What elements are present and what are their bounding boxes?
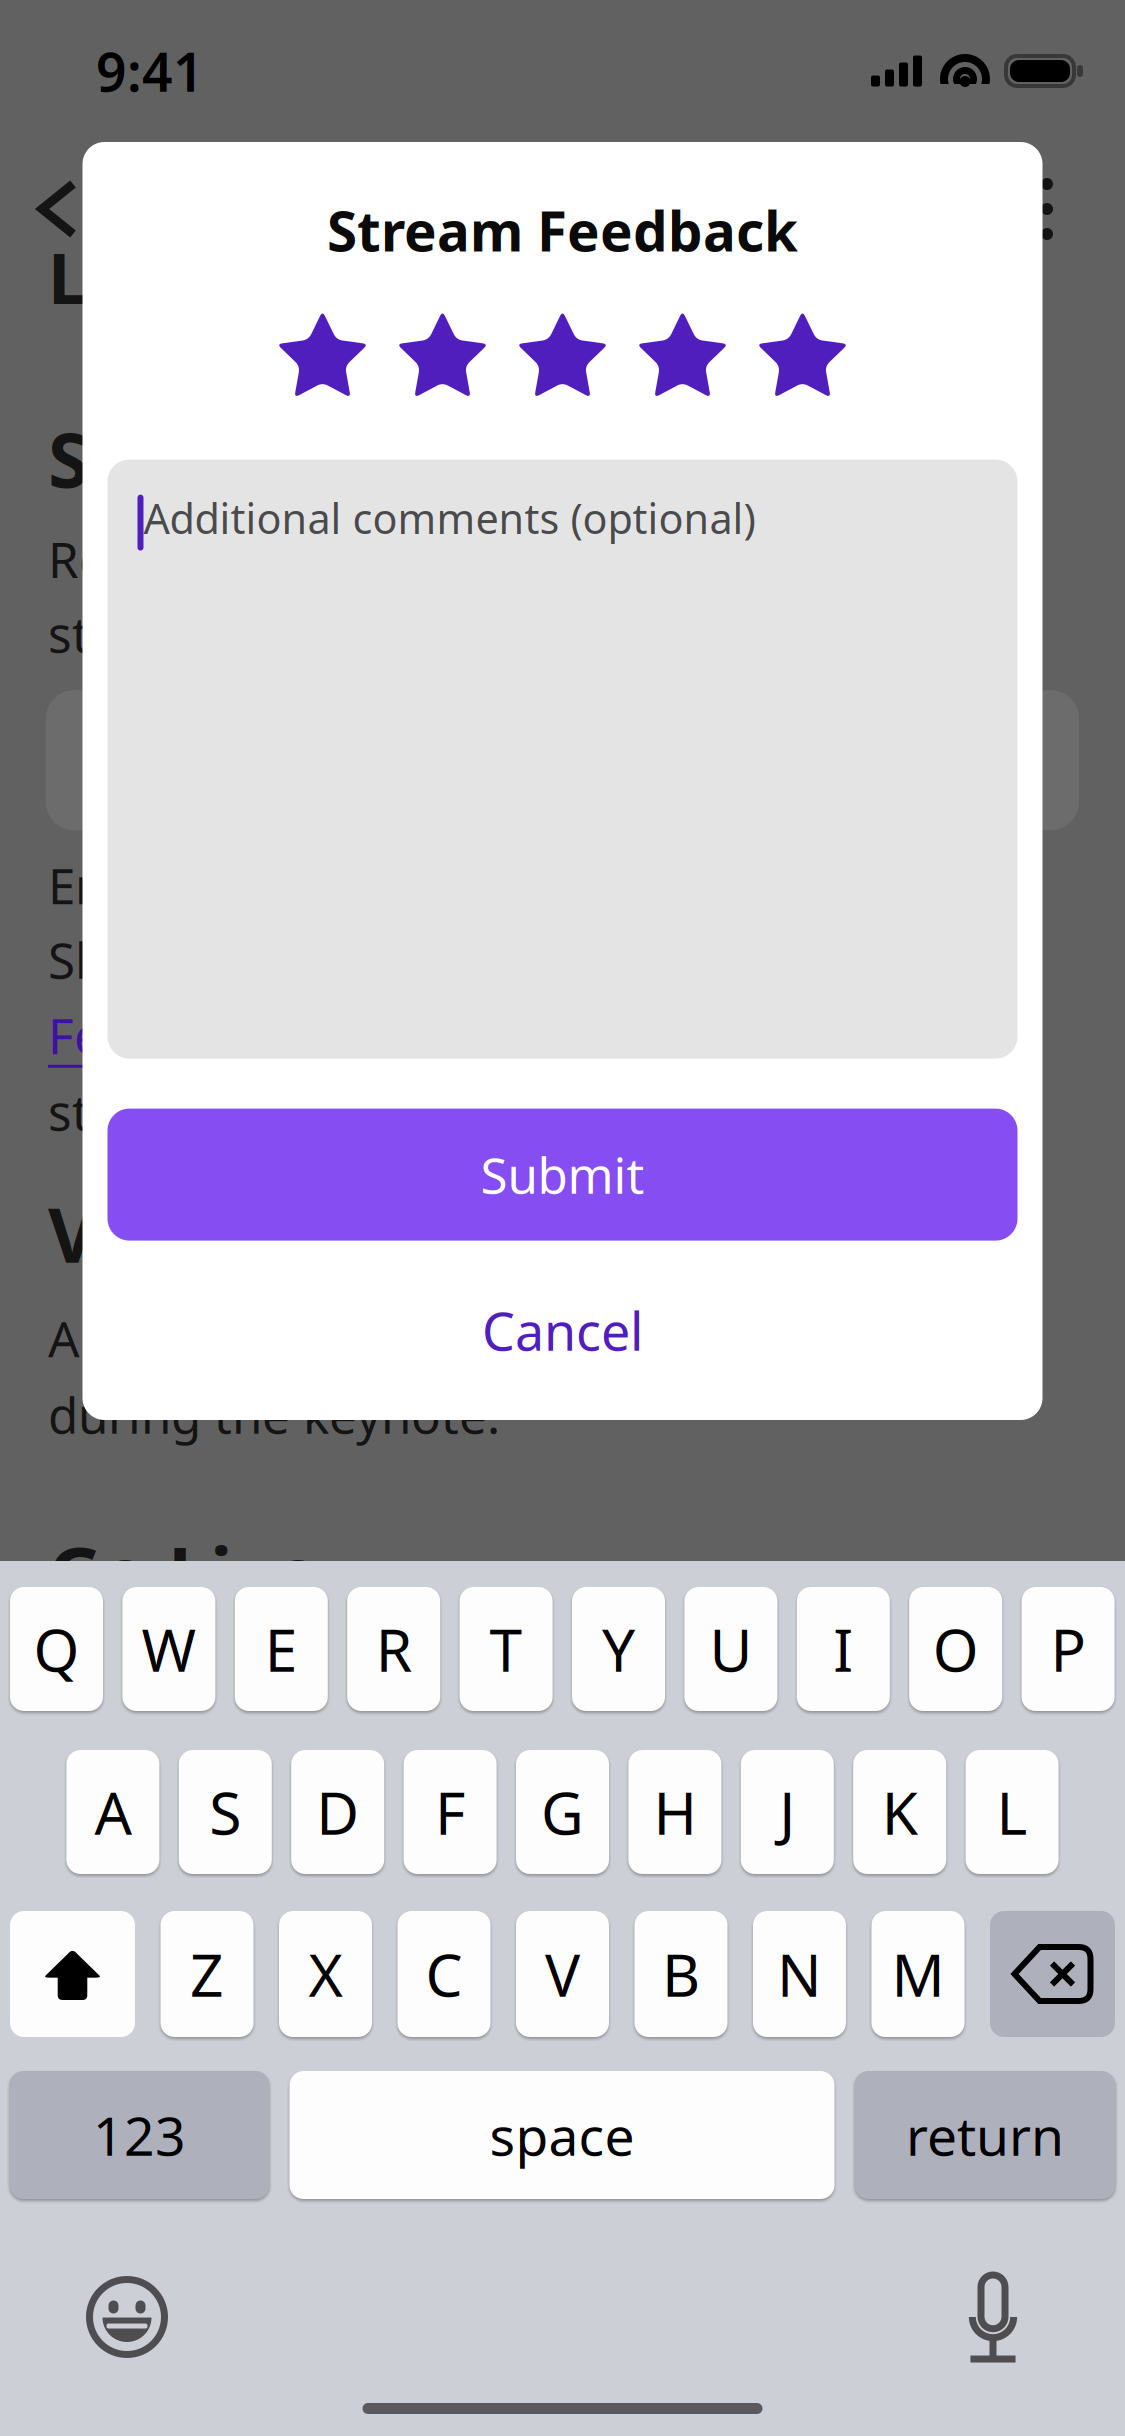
staticText: F bbox=[435, 1773, 465, 1851]
button[interactable]: Rate 5 stars bbox=[757, 307, 848, 403]
staticText: K bbox=[882, 1773, 918, 1851]
button[interactable]: N bbox=[753, 1911, 846, 2037]
staticText: during the keynote. bbox=[48, 1382, 500, 1447]
button[interactable]: Rate 1 stars bbox=[277, 307, 368, 403]
button[interactable]: G bbox=[516, 1750, 609, 1874]
button[interactable]: X bbox=[279, 1911, 372, 2037]
button[interactable]: 123 bbox=[9, 2071, 269, 2199]
staticText: Stream Feedback bbox=[327, 194, 798, 267]
staticText: G bbox=[541, 1773, 584, 1851]
button[interactable]: Rate 3 stars bbox=[517, 307, 608, 403]
button[interactable]: Shift bbox=[10, 1911, 135, 2037]
staticText: D bbox=[316, 1773, 359, 1851]
button[interactable]: Delete bbox=[990, 1911, 1115, 2037]
staticText: P bbox=[1051, 1610, 1086, 1688]
staticText: space bbox=[489, 2100, 634, 2170]
button[interactable]: W bbox=[122, 1587, 215, 1711]
staticText: Q bbox=[33, 1610, 79, 1688]
button[interactable]: E bbox=[235, 1587, 328, 1711]
staticText: Audience peaked at 1,240 bbox=[48, 1305, 643, 1371]
button[interactable]: Q bbox=[10, 1587, 103, 1711]
button[interactable]: H bbox=[628, 1750, 721, 1874]
staticText: Live Stream Quality bbox=[48, 231, 728, 323]
staticText: Cancel bbox=[482, 1296, 643, 1365]
staticText: M bbox=[891, 1935, 944, 2013]
staticText: E bbox=[265, 1610, 298, 1688]
button[interactable]: Cancel bbox=[82, 1286, 1042, 1376]
staticText: 123 bbox=[93, 2100, 186, 2170]
staticText: Recent broadcast ran for 1 h 12 m with bbox=[48, 526, 946, 592]
staticText: N bbox=[777, 1935, 822, 2013]
button[interactable]: V bbox=[516, 1911, 609, 2037]
button[interactable]: U bbox=[684, 1587, 777, 1711]
button[interactable]: O bbox=[909, 1587, 1002, 1711]
button[interactable]: D bbox=[291, 1750, 384, 1874]
staticText: return bbox=[906, 2100, 1064, 2170]
staticText: A bbox=[94, 1773, 131, 1851]
staticText: S bbox=[209, 1773, 241, 1851]
button[interactable]: A bbox=[66, 1750, 159, 1874]
button[interactable]: Y bbox=[572, 1587, 665, 1711]
button[interactable]: F bbox=[404, 1750, 497, 1874]
button[interactable]: return bbox=[854, 2071, 1115, 2199]
staticText: C bbox=[425, 1935, 462, 2013]
staticText: Enjoying the service? Tap bbox=[48, 852, 624, 918]
button[interactable]: M bbox=[871, 1911, 964, 2037]
staticText: Share your experience with us bbox=[48, 927, 745, 992]
staticText: Submit bbox=[480, 1142, 644, 1207]
staticText: Session Summary bbox=[48, 409, 702, 508]
staticText: X bbox=[308, 1935, 342, 2013]
staticText: Z bbox=[190, 1935, 224, 2013]
button[interactable]: L bbox=[966, 1750, 1059, 1874]
staticText: Feedback bbox=[48, 1002, 268, 1068]
staticText: Y bbox=[602, 1610, 635, 1688]
staticText: R bbox=[376, 1610, 412, 1688]
staticText: O bbox=[933, 1610, 979, 1688]
button[interactable]: Dictate bbox=[969, 2275, 1017, 2359]
staticText: W bbox=[141, 1610, 196, 1688]
button[interactable]: More options bbox=[1025, 162, 1069, 256]
button[interactable]: B bbox=[634, 1911, 727, 2037]
button[interactable]: space bbox=[289, 2071, 834, 2199]
button[interactable]: K bbox=[853, 1750, 946, 1874]
staticText: T bbox=[490, 1610, 523, 1688]
staticText: Viewers bbox=[48, 1184, 341, 1283]
button[interactable]: S bbox=[179, 1750, 272, 1874]
button[interactable]: Submit bbox=[107, 1109, 1017, 1241]
staticText: J bbox=[779, 1773, 795, 1851]
button[interactable]: C bbox=[397, 1911, 490, 2037]
button[interactable]: J bbox=[741, 1750, 834, 1874]
staticText: 9:41 bbox=[96, 36, 204, 106]
staticText: V bbox=[545, 1935, 580, 2013]
button[interactable]: Z bbox=[160, 1911, 253, 2037]
button[interactable]: T bbox=[460, 1587, 553, 1711]
button[interactable]: Back bbox=[26, 168, 89, 250]
button[interactable]: Rate 2 stars bbox=[397, 307, 488, 403]
staticText: I bbox=[833, 1610, 853, 1688]
staticText: U bbox=[709, 1610, 752, 1688]
button[interactable]: P bbox=[1022, 1587, 1115, 1711]
staticText: Additional comments (optional) bbox=[143, 491, 755, 545]
staticText: stable bitrate throughout. bbox=[48, 601, 647, 666]
button[interactable]: I bbox=[797, 1587, 890, 1711]
staticText: B bbox=[662, 1935, 700, 2013]
staticText: L bbox=[997, 1773, 1028, 1851]
button[interactable]: R bbox=[347, 1587, 440, 1711]
staticText: H bbox=[653, 1773, 696, 1851]
button[interactable]: Additional comments (optional) bbox=[107, 460, 1017, 1059]
button[interactable]: Rate 4 stars bbox=[637, 307, 728, 403]
staticText: straight to the team. bbox=[48, 1079, 524, 1144]
button[interactable]: Emoji bbox=[86, 2276, 168, 2358]
staticText: Go Live bbox=[48, 1523, 320, 1623]
